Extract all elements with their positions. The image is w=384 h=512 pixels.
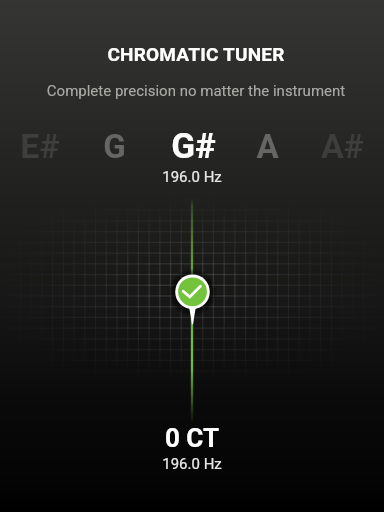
staticText: E# [20,126,60,166]
staticText: G# [171,126,216,167]
staticText: A# [321,126,364,166]
staticText: A [256,127,279,166]
button[interactable]: In tune indicator [170,269,215,327]
staticText: Complete precision no matter the instrum… [4,82,384,100]
staticText: G [103,127,126,166]
staticText: CHROMATIC TUNER [4,43,384,65]
button[interactable]: A [237,125,297,167]
staticText: 196.0 Hz [0,168,384,186]
button[interactable]: A# [312,125,372,167]
staticText: 0 CT [0,423,384,453]
button[interactable]: G# [163,125,223,167]
button[interactable]: G [84,125,144,167]
button[interactable]: E# [10,125,70,167]
staticText: 196.0 Hz [0,455,384,473]
